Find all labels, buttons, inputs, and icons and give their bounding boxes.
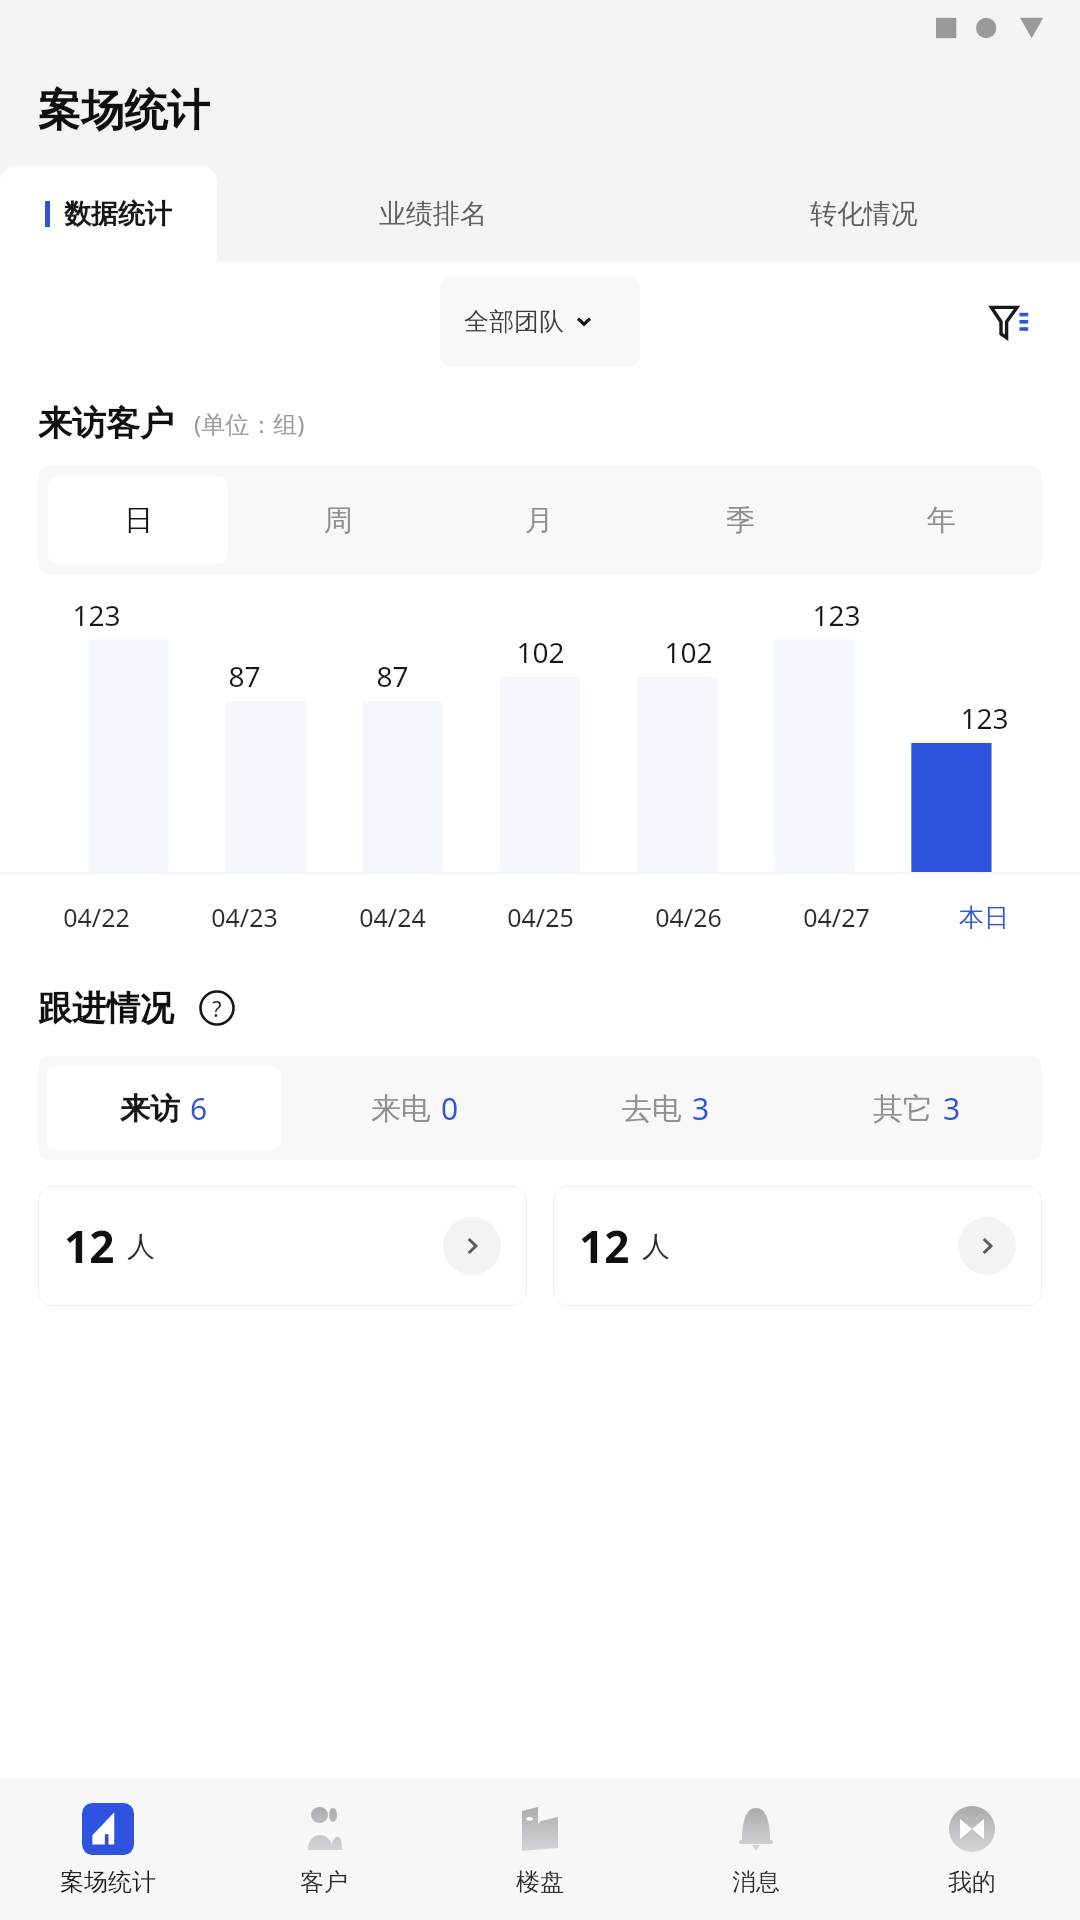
staticText: 转化情况 <box>810 197 918 231</box>
button[interactable]: 其它 <box>791 1066 1042 1150</box>
button[interactable]: 业绩排名 <box>217 166 648 262</box>
button[interactable]: 12 <box>553 1186 1042 1306</box>
staticText: 我的 <box>948 1867 996 1897</box>
button[interactable]: 全部团队 <box>440 276 640 366</box>
button[interactable]: 我的 <box>864 1778 1080 1920</box>
button[interactable]: 周 <box>238 476 439 564</box>
button[interactable]: 月 <box>439 476 640 564</box>
staticText: 案场统计 <box>38 84 210 138</box>
staticText: 楼盘 <box>516 1867 564 1897</box>
staticText: 消息 <box>732 1867 780 1897</box>
staticText: 123 <box>72 596 121 634</box>
button[interactable]: 年 <box>841 476 1042 564</box>
staticText: 全部团队 <box>464 306 564 337</box>
staticText: 123 <box>960 699 1009 737</box>
staticText: 04/23 <box>211 900 278 934</box>
button[interactable]: 日 <box>48 476 228 564</box>
staticText: (单位：组) <box>194 407 305 440</box>
staticText: 来访客户 <box>38 402 174 445</box>
button[interactable]: 数据统计 <box>0 166 217 262</box>
button[interactable]: 案场统计 <box>0 1778 216 1920</box>
staticText: 12 <box>64 1216 115 1276</box>
staticText: 来电 <box>371 1090 431 1128</box>
button[interactable]: 楼盘 <box>432 1778 648 1920</box>
staticText: 客户 <box>300 1867 348 1897</box>
staticText: 87 <box>228 657 261 695</box>
staticText: 04/22 <box>63 900 130 934</box>
button[interactable]: 筛选 <box>976 288 1042 354</box>
button[interactable]: 消息 <box>648 1778 864 1920</box>
button[interactable]: 帮助说明 <box>196 987 238 1029</box>
button[interactable]: 来电 <box>289 1066 540 1150</box>
staticText: 月 <box>525 502 554 539</box>
staticText: 人 <box>642 1229 670 1264</box>
staticText: 3 <box>692 1088 710 1129</box>
button[interactable]: 来访 <box>46 1066 281 1150</box>
staticText: 87 <box>376 657 409 695</box>
button[interactable]: 转化情况 <box>648 166 1080 262</box>
staticText: 人 <box>127 1229 155 1264</box>
button[interactable]: 12 <box>38 1186 527 1306</box>
staticText: 来访 <box>120 1090 180 1128</box>
button[interactable]: 去电 <box>540 1066 791 1150</box>
staticText: 跟进情况 <box>38 987 174 1030</box>
staticText: 6 <box>190 1088 208 1129</box>
staticText: 日 <box>124 502 153 539</box>
button[interactable]: 季 <box>640 476 841 564</box>
staticText: 周 <box>324 502 353 539</box>
staticText: 数据统计 <box>64 197 172 231</box>
staticText: ? <box>212 993 222 1023</box>
button[interactable]: 客户 <box>216 1778 432 1920</box>
staticText: 案场统计 <box>60 1867 156 1897</box>
staticText: 12 <box>579 1216 630 1276</box>
staticText: 其它 <box>873 1090 933 1128</box>
staticText: 04/27 <box>803 900 870 934</box>
staticText: 年 <box>927 502 956 539</box>
staticText: 102 <box>516 633 565 671</box>
staticText: 季 <box>726 502 755 539</box>
staticText: 123 <box>812 596 861 634</box>
staticText: 去电 <box>622 1090 682 1128</box>
staticText: 04/26 <box>655 900 722 934</box>
staticText: 3 <box>943 1088 961 1129</box>
staticText: 本日 <box>959 902 1009 933</box>
staticText: 0 <box>441 1088 459 1129</box>
staticText: 04/24 <box>359 900 426 934</box>
staticText: 04/25 <box>507 900 574 934</box>
staticText: 102 <box>664 633 713 671</box>
staticText: 业绩排名 <box>379 197 487 231</box>
